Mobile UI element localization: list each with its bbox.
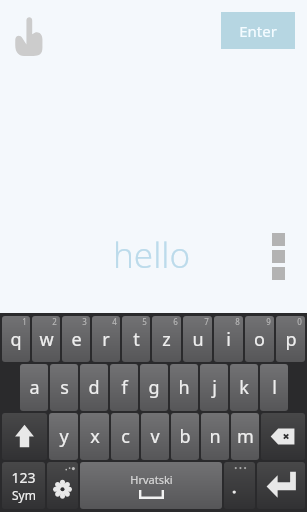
button[interactable]: v [141, 413, 169, 460]
button[interactable]: e [62, 316, 90, 362]
button[interactable]: t [122, 316, 150, 362]
staticText: m [237, 424, 254, 449]
button[interactable]: l [260, 364, 288, 411]
staticText: x [90, 424, 100, 449]
staticText: j [212, 375, 217, 400]
button[interactable]: y [49, 413, 78, 460]
staticText: k [239, 375, 249, 400]
staticText: a [29, 375, 40, 400]
staticText: n [209, 424, 221, 449]
staticText: 123 [11, 468, 36, 487]
staticText: 6 [173, 316, 178, 327]
staticText: p [285, 327, 297, 352]
staticText: hello [113, 231, 191, 279]
button[interactable]: k [230, 364, 258, 411]
staticText: b [179, 424, 191, 449]
staticText: l [272, 375, 277, 400]
button[interactable]: Enter [221, 12, 295, 49]
staticText: h [178, 375, 190, 400]
staticText: 2 [52, 316, 57, 327]
button[interactable]: s [50, 364, 78, 411]
button[interactable]: o [245, 316, 274, 362]
staticText: w [39, 327, 54, 352]
button[interactable]: p [276, 316, 305, 362]
staticText: z [162, 327, 171, 352]
button[interactable]: h [170, 364, 198, 411]
button[interactable]: i [214, 316, 243, 362]
staticText: 5 [142, 316, 147, 327]
button[interactable]: Enter [257, 462, 305, 509]
staticText: f [121, 375, 128, 400]
button[interactable]: Period [224, 462, 255, 509]
button[interactable]: j [200, 364, 228, 411]
staticText: 1 [22, 316, 27, 327]
staticText: 8 [235, 316, 240, 327]
button[interactable]: Backspace [261, 413, 305, 460]
staticText: Hrvatski [130, 472, 173, 487]
button[interactable]: u [183, 316, 212, 362]
button[interactable]: Settings [47, 462, 78, 509]
staticText: Enter [239, 21, 277, 41]
button[interactable]: Shift [2, 413, 47, 460]
staticText: v [150, 424, 160, 449]
staticText: 0 [297, 316, 302, 327]
button[interactable]: d [80, 364, 108, 411]
staticText: u [192, 327, 204, 352]
button[interactable]: f [110, 364, 138, 411]
button[interactable]: w [32, 316, 60, 362]
staticText: 4 [112, 316, 117, 327]
staticText: c [121, 424, 130, 449]
button[interactable]: c [111, 413, 139, 460]
button[interactable]: b [171, 413, 199, 460]
staticText: d [88, 375, 100, 400]
button[interactable]: 123 [2, 462, 45, 509]
staticText: s [60, 375, 69, 400]
staticText: Sym [12, 487, 36, 503]
staticText: g [148, 375, 160, 400]
staticText: t [133, 327, 140, 352]
staticText: o [254, 327, 265, 352]
button[interactable]: q [2, 316, 30, 362]
staticText: 9 [266, 316, 271, 327]
staticText: y [59, 424, 69, 449]
staticText: 7 [204, 316, 209, 327]
button[interactable]: a [20, 364, 48, 411]
staticText: 3 [82, 316, 87, 327]
staticText: e [71, 327, 82, 352]
staticText: i [226, 327, 231, 352]
button[interactable]: Space [80, 462, 222, 509]
button[interactable]: g [140, 364, 168, 411]
button[interactable]: x [80, 413, 109, 460]
button[interactable]: m [231, 413, 259, 460]
button[interactable]: z [152, 316, 181, 362]
button[interactable]: n [201, 413, 229, 460]
staticText: r [102, 327, 110, 352]
button[interactable]: r [92, 316, 120, 362]
staticText: q [10, 327, 22, 352]
other: Pointer [13, 15, 45, 56]
